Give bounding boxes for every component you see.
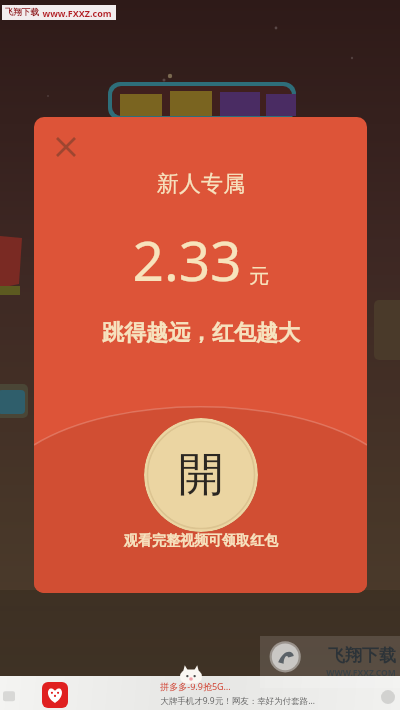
staticText: 2.33 [132,222,242,297]
staticText: 拼多多-9.9抢5G… [160,680,231,692]
button[interactable]: Open red packet [144,418,258,532]
button[interactable]: Close [46,127,86,167]
staticText: 飞翔下载 [328,645,396,666]
button[interactable]: 观看完整视频可领取红包 [124,532,278,550]
staticText: 观看完整视频可领取红包 [124,532,278,550]
button[interactable]: Close [34,117,367,593]
button[interactable]: 拼多多-9.9抢5G… [0,676,400,710]
staticText: 開 [178,446,224,504]
staticText: 元 [249,264,269,289]
staticText: 飞翔下载 [5,7,39,18]
staticText: WWW.FXXZ.COM [326,667,396,679]
staticText: 跳得越远，红包越大 [102,319,300,347]
staticText: 大牌手机才9.9元！网友：幸好为付套路… [160,695,315,707]
staticText: 新人专属 [157,170,245,198]
staticText: www.FXXZ.com [42,7,112,19]
